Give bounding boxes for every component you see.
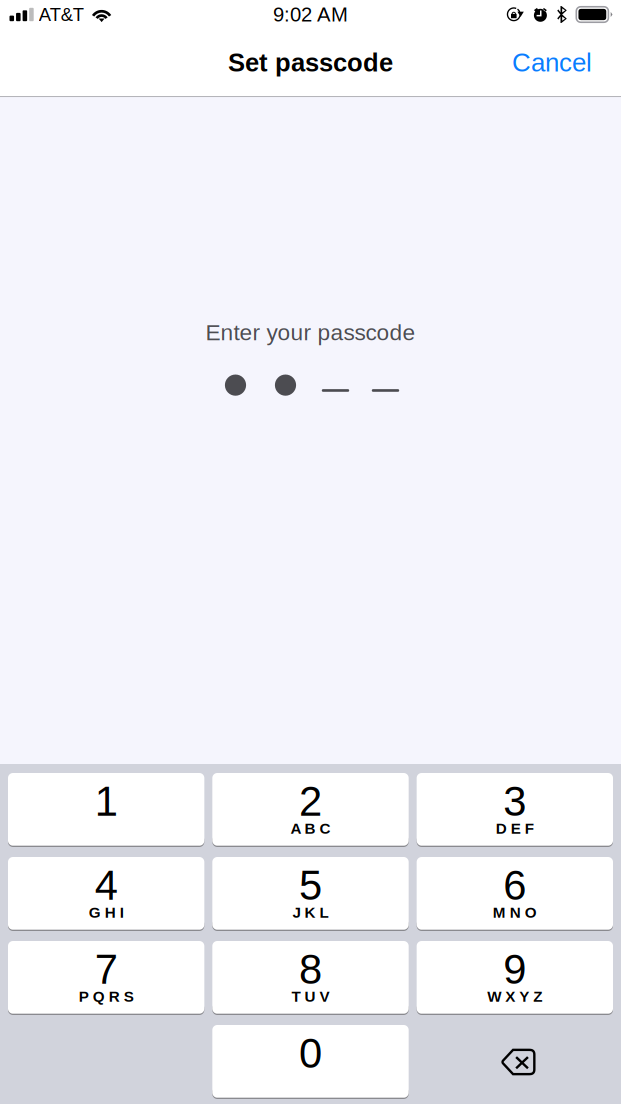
staticText: P Q R S	[79, 988, 134, 1005]
staticText: 2	[299, 778, 322, 825]
staticText: A B C	[290, 820, 330, 837]
button[interactable]: 4	[8, 857, 204, 931]
staticText: Cancel	[512, 48, 592, 77]
button[interactable]: 3	[417, 773, 613, 847]
button[interactable]: Delete	[417, 1025, 613, 1099]
button[interactable]: 7	[8, 941, 204, 1015]
staticText: W X Y Z	[487, 988, 542, 1005]
staticText: M N O	[493, 904, 537, 921]
staticText: Enter your passcode	[205, 320, 415, 345]
staticText: 1	[95, 778, 118, 825]
staticText: 3	[503, 778, 526, 825]
staticText: 5	[299, 862, 322, 909]
staticText: G H I	[89, 904, 124, 921]
staticText: D E F	[496, 820, 534, 837]
staticText: 4	[95, 862, 118, 909]
staticText: 9:02 AM	[273, 3, 348, 26]
button[interactable]: 8	[212, 941, 409, 1015]
staticText: T U V	[291, 988, 329, 1005]
button[interactable]: Cancel	[500, 39, 604, 86]
staticText: 6	[503, 862, 526, 909]
staticText: Set passcode	[228, 48, 393, 77]
staticText: AT&T	[39, 4, 84, 25]
button[interactable]: 1	[8, 773, 204, 847]
staticText: 9	[503, 946, 526, 993]
button[interactable]: 2	[212, 773, 409, 847]
staticText: 0	[299, 1030, 322, 1077]
staticText: 8	[299, 946, 322, 993]
staticText: 7	[95, 946, 118, 993]
staticText: J K L	[292, 904, 328, 921]
button[interactable]: 6	[417, 857, 613, 931]
button[interactable]: 0	[212, 1025, 409, 1099]
button[interactable]: 5	[212, 857, 409, 931]
button[interactable]: 9	[417, 941, 613, 1015]
